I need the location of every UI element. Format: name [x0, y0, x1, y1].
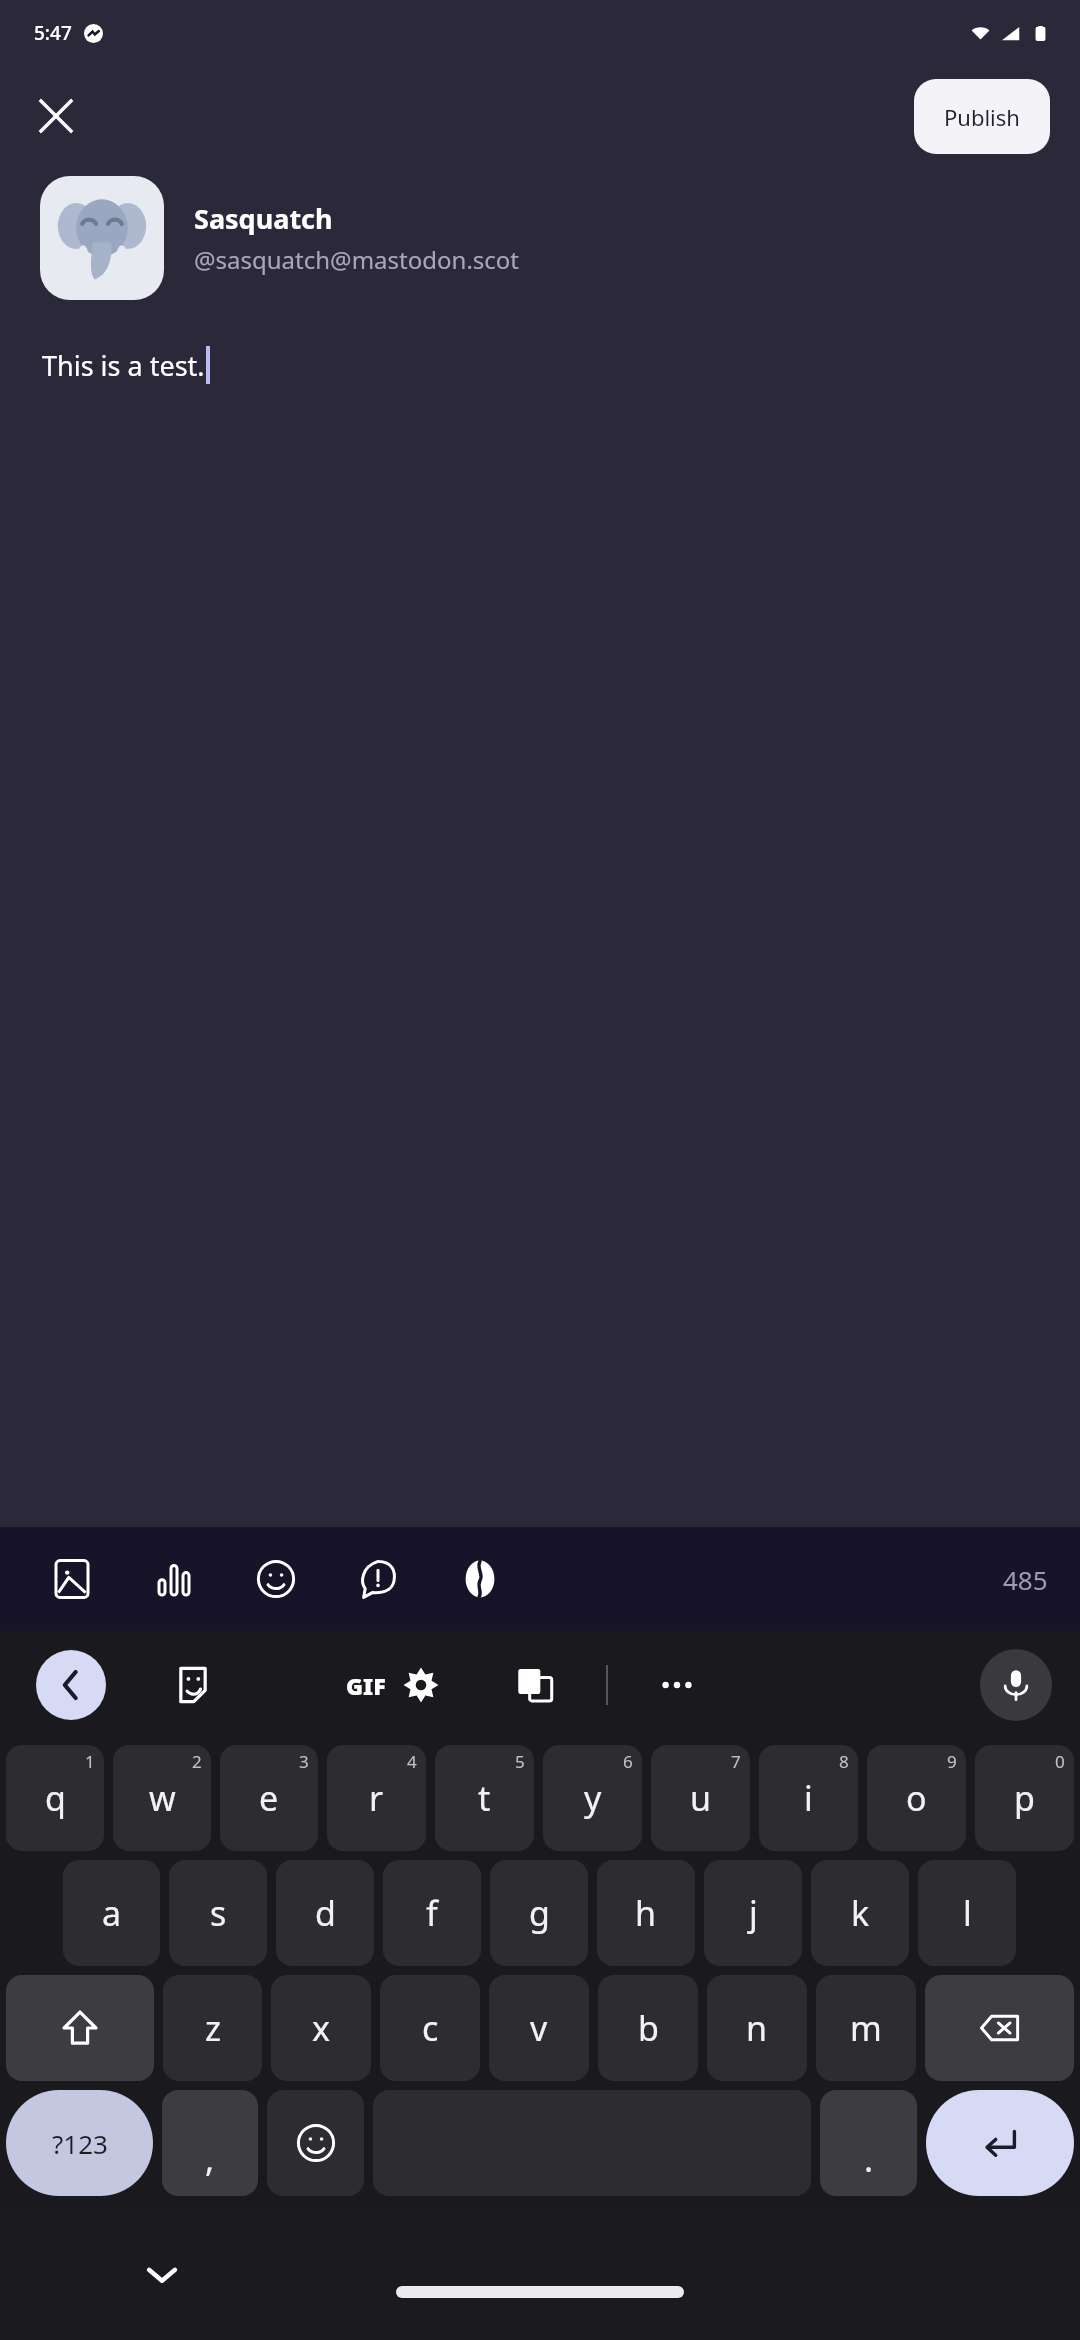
button[interactable]: Post visibility — [450, 1549, 510, 1609]
staticText: f — [426, 1890, 438, 1936]
button[interactable]: r — [327, 1745, 426, 1851]
staticText: h — [635, 1890, 657, 1936]
button[interactable]: Shift — [6, 1975, 154, 2081]
staticText: u — [690, 1775, 712, 1821]
staticText: GIF — [346, 1670, 386, 1701]
button[interactable]: p — [975, 1745, 1074, 1851]
button[interactable]: ?123 — [6, 2090, 153, 2196]
staticText: 9 — [947, 1750, 957, 1773]
staticText: ?123 — [52, 2126, 108, 2161]
button[interactable]: Comma — [162, 2090, 258, 2196]
staticText: Sasquatch — [194, 200, 333, 237]
staticText: t — [478, 1775, 491, 1821]
staticText: w — [149, 1775, 176, 1821]
staticText: 5 — [515, 1750, 525, 1773]
staticText: q — [45, 1775, 66, 1821]
staticText: 6 — [623, 1750, 633, 1773]
button[interactable]: Backspace — [925, 1975, 1074, 2081]
button[interactable]: Stickers — [164, 1656, 222, 1714]
button[interactable]: i — [759, 1745, 858, 1851]
button[interactable]: Publish — [914, 79, 1050, 154]
staticText: e — [259, 1775, 279, 1821]
button[interactable]: j — [704, 1860, 802, 1966]
staticText: 7 — [731, 1750, 741, 1773]
staticText: s — [210, 1890, 227, 1936]
button[interactable]: More options — [648, 1656, 706, 1714]
button[interactable]: Add poll — [144, 1549, 204, 1609]
staticText: v — [530, 2005, 548, 2051]
button[interactable]: g — [490, 1860, 588, 1966]
staticText: Publish — [944, 102, 1020, 132]
button[interactable]: s — [169, 1860, 267, 1966]
button[interactable]: z — [163, 1975, 262, 2081]
staticText: o — [906, 1775, 927, 1821]
button[interactable]: Period — [820, 2090, 917, 2196]
button[interactable]: Sasquatch — [40, 176, 1040, 300]
button[interactable]: x — [271, 1975, 371, 2081]
button[interactable]: w — [113, 1745, 211, 1851]
staticText: r — [369, 1775, 384, 1821]
staticText: d — [315, 1890, 336, 1936]
button[interactable]: Back — [36, 1650, 106, 1720]
button[interactable]: Close — [24, 84, 88, 148]
staticText: k — [851, 1890, 870, 1936]
button[interactable]: n — [707, 1975, 807, 2081]
button[interactable]: k — [811, 1860, 909, 1966]
staticText: c — [422, 2005, 439, 2051]
button[interactable]: Enter — [926, 2090, 1074, 2196]
staticText: . — [864, 2136, 874, 2182]
staticText: 4 — [407, 1750, 417, 1773]
staticText: g — [529, 1890, 550, 1936]
staticText: p — [1014, 1775, 1035, 1821]
staticText: 5:47 — [34, 20, 72, 46]
button[interactable]: q — [6, 1745, 104, 1851]
staticText: This is a test. — [42, 347, 205, 384]
button[interactable]: Translate — [506, 1656, 564, 1714]
staticText: a — [102, 1890, 122, 1936]
button[interactable]: b — [598, 1975, 698, 2081]
staticText: @sasquatch@mastodon.scot — [194, 243, 520, 276]
button[interactable]: Hide keyboard — [130, 2243, 194, 2307]
button[interactable]: d — [276, 1860, 374, 1966]
button[interactable]: Add image — [42, 1549, 102, 1609]
button[interactable]: m — [816, 1975, 916, 2081]
staticText: j — [749, 1890, 758, 1936]
button[interactable]: Voice input — [980, 1649, 1052, 1721]
button[interactable]: Keyboard settings — [392, 1656, 450, 1714]
button[interactable]: h — [597, 1860, 695, 1966]
button[interactable]: c — [380, 1975, 480, 2081]
button[interactable]: a — [63, 1860, 160, 1966]
staticText: z — [205, 2005, 221, 2051]
staticText: 485 — [1003, 1562, 1048, 1597]
staticText: b — [638, 2005, 659, 2051]
button[interactable]: Content warning — [348, 1549, 408, 1609]
button[interactable]: Add emoji — [246, 1549, 306, 1609]
button[interactable]: t — [435, 1745, 534, 1851]
button[interactable]: e — [220, 1745, 318, 1851]
staticText: x — [312, 2005, 330, 2051]
button[interactable]: This is a test. — [42, 346, 1080, 384]
staticText: 1 — [85, 1750, 95, 1773]
button[interactable]: l — [918, 1860, 1016, 1966]
staticText: n — [746, 2005, 768, 2051]
button[interactable]: f — [383, 1860, 481, 1966]
button[interactable]: Emoji — [267, 2090, 364, 2196]
button[interactable]: v — [489, 1975, 589, 2081]
staticText: i — [804, 1775, 813, 1821]
staticText: m — [850, 2005, 882, 2051]
staticText: l — [963, 1890, 972, 1936]
staticText: 8 — [839, 1750, 849, 1773]
button[interactable]: y — [543, 1745, 642, 1851]
staticText: , — [205, 2136, 215, 2182]
staticText: 2 — [192, 1750, 202, 1773]
staticText: 0 — [1055, 1750, 1065, 1773]
button[interactable]: o — [867, 1745, 966, 1851]
staticText: y — [584, 1775, 602, 1821]
button[interactable]: u — [651, 1745, 750, 1851]
staticText: 3 — [299, 1750, 309, 1773]
